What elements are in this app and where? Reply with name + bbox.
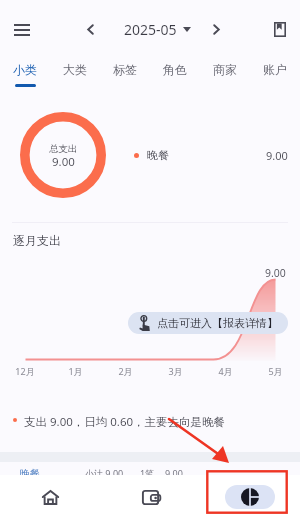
staticText: 1月	[68, 365, 83, 377]
staticText: 角色	[163, 62, 187, 77]
staticText: 总支出	[49, 143, 78, 155]
button[interactable]: Bookmark	[263, 12, 297, 47]
staticText: 9.00	[165, 467, 183, 475]
staticText: 9.00	[265, 266, 286, 280]
button[interactable]: Charts	[200, 475, 300, 519]
staticText: 晚餐	[147, 148, 169, 162]
button[interactable]: Wallet	[100, 475, 200, 519]
button[interactable]: Menu	[4, 12, 40, 47]
button[interactable]: 2025-05	[120, 17, 195, 41]
staticText: 点击可进入【报表详情】	[157, 316, 278, 330]
staticText: 4月	[218, 365, 233, 377]
button[interactable]: 小类	[0, 52, 50, 90]
staticText: 逐月支出	[13, 233, 61, 248]
button[interactable]: 商家	[200, 52, 250, 90]
button[interactable]: Next month	[203, 16, 229, 42]
staticText: 2月	[118, 365, 133, 377]
button[interactable]: Previous month	[77, 16, 103, 42]
staticText: 小计 9.00	[85, 467, 124, 475]
button[interactable]: 标签	[100, 52, 150, 90]
staticText: 晚餐	[20, 467, 40, 475]
staticText: 5月	[268, 365, 283, 377]
button[interactable]: 晚餐	[134, 144, 288, 166]
staticText: 支出 9.00，日均 0.60，主要去向是晚餐	[24, 414, 226, 430]
button[interactable]: 账户	[250, 52, 300, 90]
staticText: 商家	[213, 62, 237, 77]
button[interactable]: 大类	[50, 52, 100, 90]
staticText: 3月	[168, 365, 183, 377]
button[interactable]: 角色	[150, 52, 200, 90]
staticText: 大类	[63, 62, 87, 77]
staticText: 12月	[15, 365, 35, 377]
staticText: 小类	[13, 62, 37, 77]
staticText: 1笔	[140, 467, 155, 475]
staticText: 2025-05	[124, 20, 177, 39]
staticText: 9.00	[266, 148, 288, 163]
button[interactable]: 点击可进入【报表详情】	[128, 312, 288, 334]
staticText: 账户	[263, 62, 287, 77]
button[interactable]: Home	[0, 475, 100, 519]
staticText: 标签	[113, 62, 137, 77]
staticText: 9.00	[52, 154, 75, 170]
